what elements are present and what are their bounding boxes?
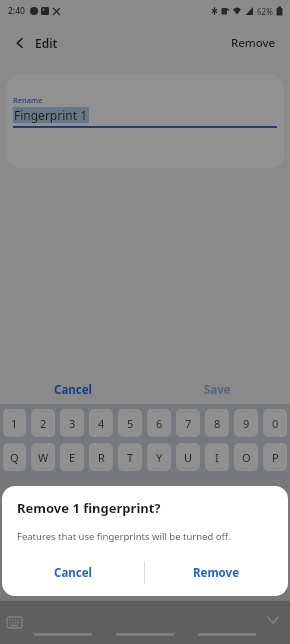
button[interactable]: 1 [3,409,26,437]
button[interactable]: 5 [118,409,142,437]
button[interactable]: Save [145,378,290,402]
staticText: Cancel [54,382,92,398]
staticText: 62% [257,6,273,17]
staticText: 4 [98,416,105,431]
staticText: Cancel [54,565,92,581]
button[interactable]: Remove [231,35,276,51]
button[interactable]: I [205,443,229,471]
staticText: Q [10,450,19,465]
button[interactable]: 7 [176,409,200,437]
staticText: Edit [35,35,58,51]
staticText: Y [156,450,163,465]
button[interactable]: 6 [147,409,171,437]
staticText: W [38,450,49,465]
button[interactable]: Y [147,443,171,471]
button[interactable]: U [176,443,200,471]
staticText: R [98,450,105,465]
button[interactable]: 0 [263,409,287,437]
staticText: U [184,450,193,465]
staticText: I [215,450,219,465]
button[interactable]: Cancel [2,551,144,595]
button[interactable]: Cancel [0,378,145,402]
button[interactable]: T [118,443,142,471]
button[interactable]: 9 [234,409,258,437]
button[interactable] [14,37,26,49]
button[interactable]: 8 [205,409,229,437]
button[interactable]: W [31,443,55,471]
staticText: T [127,450,134,465]
staticText: Rename [13,95,43,105]
button[interactable]: P [263,443,287,471]
staticText: 0 [272,416,279,431]
staticText: 5 [127,416,134,431]
button[interactable]: 4 [89,409,113,437]
button[interactable]: 3 [60,409,84,437]
staticText: Remove 1 fingerprint? [17,499,161,517]
staticText: 9 [243,416,250,431]
staticText: 2 [40,416,47,431]
button[interactable]: R [89,443,113,471]
staticText: 2:40 [8,5,25,17]
button[interactable]: O [234,443,258,471]
staticText: Fingerprint 1 [14,107,88,123]
button[interactable]: Remove [145,551,288,595]
button[interactable]: 2 [31,409,55,437]
button[interactable]: Rename [6,75,284,168]
staticText: 6 [156,416,163,431]
staticText: 8 [214,416,221,431]
staticText: Remove [193,565,240,581]
staticText: Features that use fingerprints will be t… [17,530,231,543]
staticText: E [69,450,76,465]
staticText: P [272,450,279,465]
button[interactable]: Q [3,443,26,471]
staticText: 7 [185,416,192,431]
button[interactable]: E [60,443,84,471]
staticText: 1 [11,416,18,431]
staticText: 3 [69,416,76,431]
staticText: Save [204,382,231,398]
staticText: O [242,450,251,465]
